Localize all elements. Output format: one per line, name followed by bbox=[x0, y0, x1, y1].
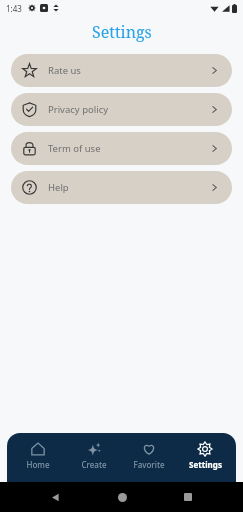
staticText: Settings bbox=[92, 21, 152, 43]
staticText: Rate us bbox=[48, 64, 81, 77]
staticText: Help bbox=[48, 181, 69, 194]
button[interactable]: Settings bbox=[180, 439, 230, 482]
staticText: 1:43 bbox=[6, 3, 22, 14]
button[interactable]: Home bbox=[110, 485, 134, 509]
staticText: Favorite bbox=[133, 459, 165, 470]
staticText: Home bbox=[26, 459, 50, 470]
button[interactable]: Home bbox=[13, 439, 63, 482]
staticText: Privacy policy bbox=[48, 103, 109, 116]
button[interactable]: Term of use bbox=[11, 132, 232, 165]
button[interactable]: Recents bbox=[176, 485, 200, 509]
button[interactable]: Privacy policy bbox=[11, 93, 232, 126]
button[interactable]: Rate us bbox=[11, 54, 232, 87]
staticText: Create bbox=[81, 459, 107, 470]
staticText: Term of use bbox=[48, 142, 101, 155]
staticText: Settings bbox=[189, 459, 222, 470]
button[interactable]: Create bbox=[69, 439, 119, 482]
button[interactable]: Help bbox=[11, 171, 232, 204]
button[interactable]: Back bbox=[43, 485, 67, 509]
button[interactable]: Favorite bbox=[124, 439, 174, 482]
